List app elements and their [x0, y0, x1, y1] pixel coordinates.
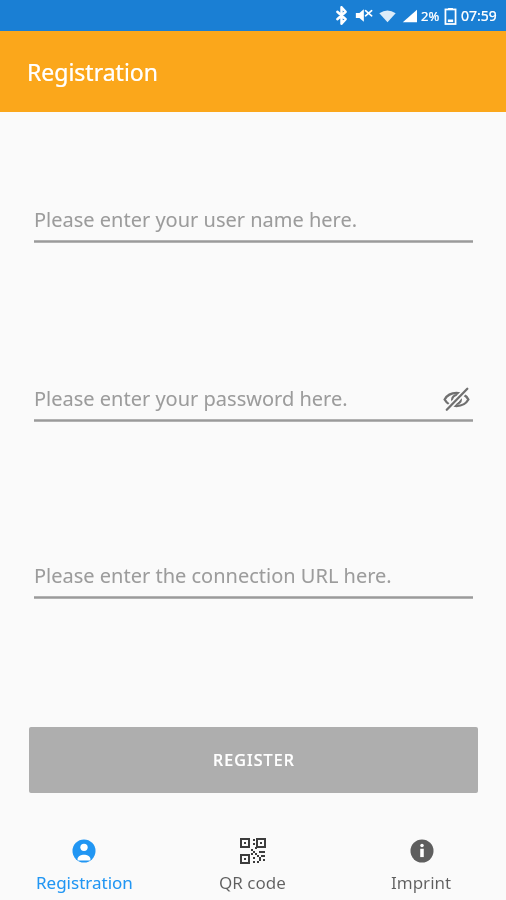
staticText: Please enter the connection URL here.	[34, 562, 392, 589]
button[interactable]: Please enter your user name here.	[34, 199, 473, 244]
button[interactable]: Imprint	[337, 822, 506, 900]
staticText: 07:59	[461, 6, 497, 25]
staticText: REGISTER	[213, 749, 295, 771]
button[interactable]: Show password	[439, 382, 473, 416]
staticText: Imprint	[391, 871, 452, 894]
staticText: Registration	[27, 56, 158, 87]
button[interactable]: QR code	[168, 822, 337, 900]
staticText: 2%	[421, 7, 440, 25]
button[interactable]: Please enter your password here.	[34, 378, 473, 423]
staticText: Registration	[36, 871, 133, 894]
button[interactable]: Please enter the connection URL here.	[34, 555, 473, 600]
staticText: Please enter your user name here.	[34, 206, 358, 233]
staticText: QR code	[219, 871, 286, 894]
button[interactable]: Registration	[0, 822, 168, 900]
staticText: Please enter your password here.	[34, 385, 348, 412]
button[interactable]: REGISTER	[29, 727, 478, 793]
